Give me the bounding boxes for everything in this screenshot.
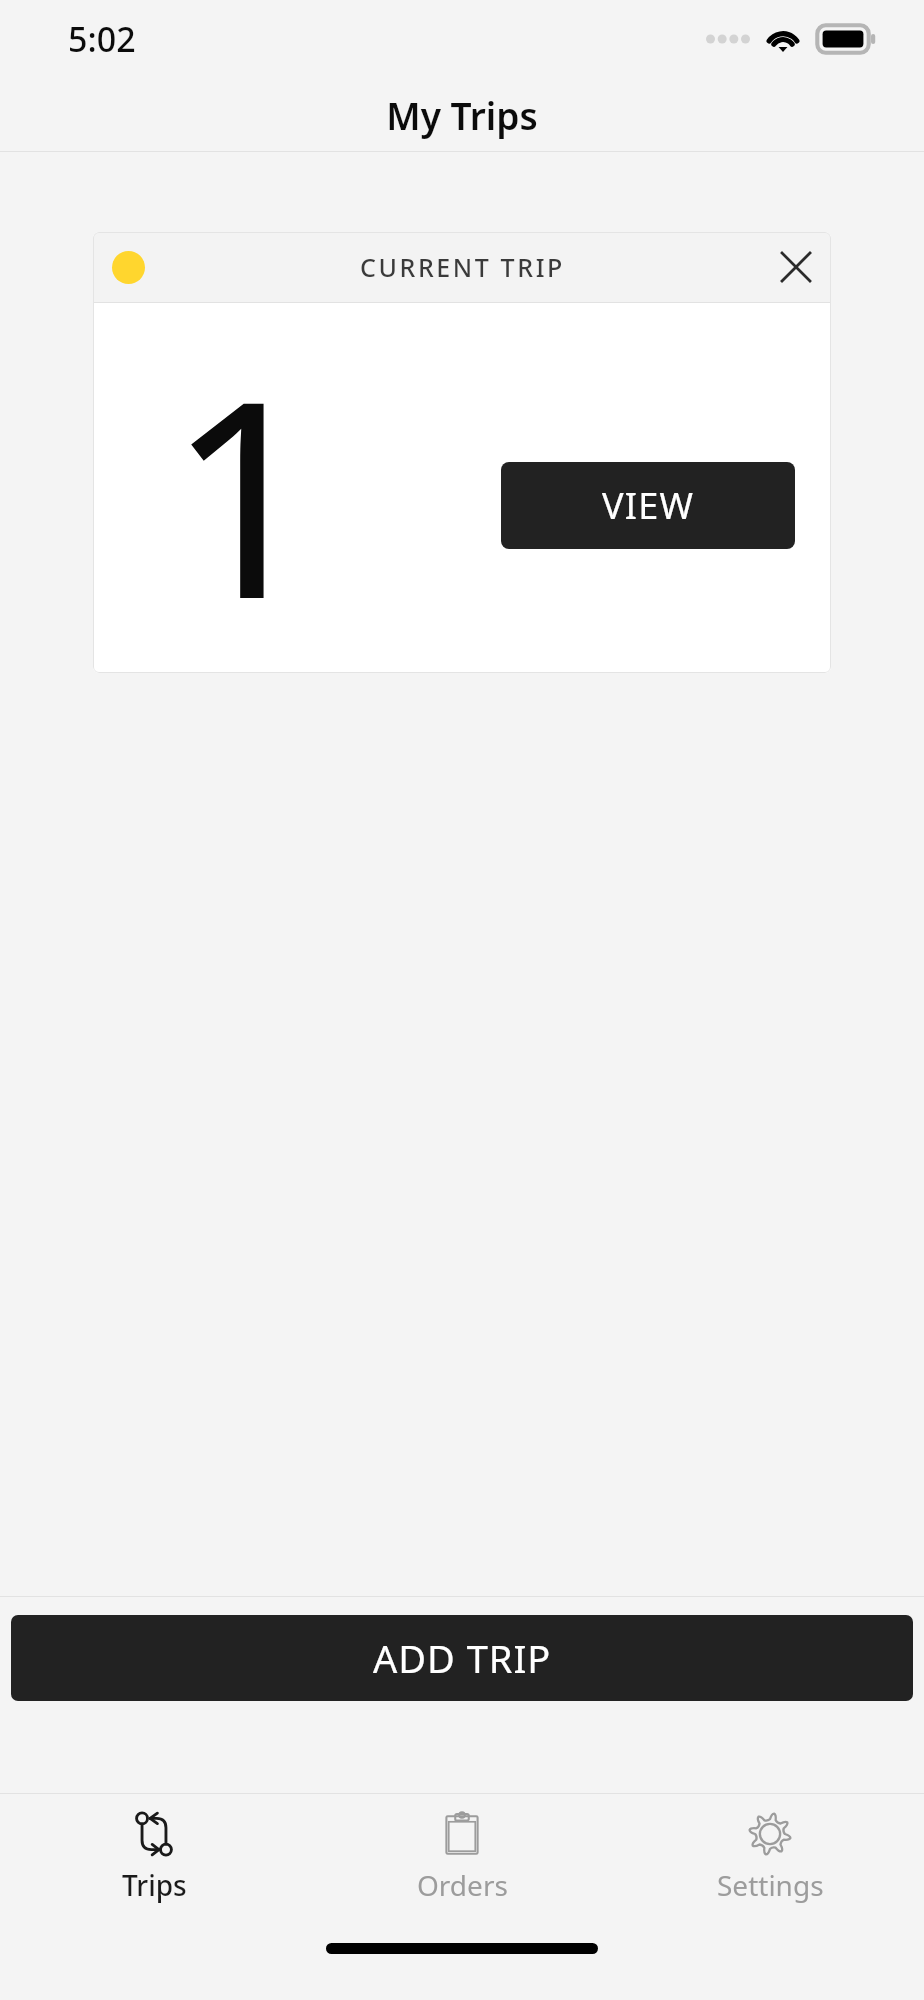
- staticText: VIEW: [602, 481, 695, 530]
- button[interactable]: Settings: [616, 1794, 924, 1904]
- staticText: 5:02: [68, 16, 136, 62]
- button[interactable]: Orders: [308, 1794, 616, 1904]
- staticText: Orders: [417, 1866, 508, 1904]
- staticText: 1: [167, 307, 323, 673]
- staticText: CURRENT TRIP: [360, 250, 565, 284]
- button[interactable]: ADD TRIP: [11, 1615, 913, 1701]
- button[interactable]: Close current trip: [761, 232, 831, 302]
- button[interactable]: Trips: [0, 1794, 308, 1904]
- staticText: Settings: [717, 1866, 824, 1904]
- button[interactable]: VIEW: [501, 462, 795, 549]
- staticText: Trips: [122, 1866, 187, 1904]
- staticText: My Trips: [386, 90, 538, 140]
- staticText: ADD TRIP: [373, 1632, 552, 1684]
